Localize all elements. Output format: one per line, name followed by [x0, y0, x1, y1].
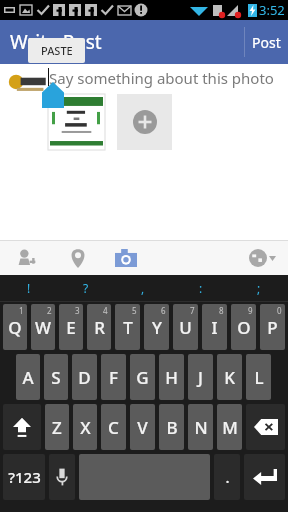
staticText: 3 — [75, 305, 80, 316]
staticText: D — [78, 366, 91, 389]
staticText: 0 — [277, 305, 282, 316]
staticText: A — [22, 366, 34, 389]
button[interactable]: ; — [230, 275, 288, 301]
button[interactable]: Y — [144, 304, 169, 350]
staticText: Q — [8, 316, 22, 339]
staticText: ?123 — [8, 467, 41, 487]
button[interactable]: , — [114, 275, 172, 301]
staticText: PASTE — [41, 43, 73, 58]
staticText: : — [199, 280, 203, 296]
staticText: O — [237, 316, 251, 339]
staticText: , — [141, 280, 145, 296]
button[interactable]: X — [73, 404, 97, 450]
staticText: Say something about this photo — [49, 68, 274, 88]
button[interactable]: U — [173, 304, 198, 350]
button[interactable]: Camera — [102, 241, 150, 275]
button[interactable]: I — [202, 304, 227, 350]
button[interactable]: Voice input — [49, 454, 75, 500]
button[interactable]: Audience selector — [236, 241, 288, 275]
staticText: 8 — [219, 305, 224, 316]
button[interactable]: Z — [45, 404, 69, 450]
staticText: N — [194, 416, 208, 439]
staticText: S — [51, 366, 61, 389]
staticText: . — [225, 467, 230, 487]
staticText: ; — [257, 280, 261, 296]
button[interactable]: PASTE — [28, 38, 85, 63]
button[interactable]: M — [217, 404, 242, 450]
staticText: V — [137, 416, 148, 439]
staticText: Post — [252, 33, 281, 52]
button[interactable]: Post — [245, 20, 288, 64]
button[interactable]: C — [101, 404, 126, 450]
staticText: B — [166, 416, 178, 439]
button[interactable]: L — [246, 354, 271, 400]
button[interactable]: Backspace — [246, 404, 285, 450]
staticText: K — [224, 366, 235, 389]
button[interactable]: Attached photo — [48, 94, 105, 150]
button[interactable]: J — [188, 354, 213, 400]
button[interactable]: ? — [57, 275, 114, 301]
button[interactable]: T — [115, 304, 140, 350]
staticText: 9 — [248, 305, 253, 316]
staticText: 3:52 — [259, 1, 285, 19]
staticText: L — [254, 366, 264, 389]
button[interactable]: D — [72, 354, 97, 400]
button[interactable]: Add photo — [117, 94, 172, 150]
button[interactable]: Tag people — [0, 241, 54, 275]
button[interactable]: H — [159, 354, 184, 400]
staticText: 2 — [47, 305, 52, 316]
button[interactable]: K — [217, 354, 242, 400]
button[interactable]: R — [87, 304, 111, 350]
button[interactable]: Enter — [244, 454, 285, 500]
button[interactable]: E — [59, 304, 83, 350]
button[interactable]: Q — [3, 304, 27, 350]
staticText: I — [211, 316, 218, 339]
button[interactable]: O — [231, 304, 256, 350]
staticText: T — [123, 316, 133, 339]
button[interactable]: N — [188, 404, 213, 450]
button[interactable]: P — [260, 304, 285, 350]
staticText: 6 — [161, 305, 166, 316]
staticText: H — [165, 366, 178, 389]
button[interactable]: Shift — [3, 404, 41, 450]
button[interactable]: A — [16, 354, 40, 400]
button[interactable]: ?123 — [3, 454, 45, 500]
staticText: 4 — [103, 305, 108, 316]
staticText: J — [198, 366, 203, 389]
button[interactable]: B — [159, 404, 184, 450]
staticText: W — [35, 316, 51, 339]
staticText: Z — [52, 416, 62, 439]
button[interactable]: : — [172, 275, 230, 301]
staticText: C — [108, 416, 119, 439]
staticText: R — [94, 316, 105, 339]
staticText: Y — [152, 316, 162, 339]
staticText: G — [136, 366, 149, 389]
button[interactable]: Add location — [54, 241, 102, 275]
button[interactable]: W — [31, 304, 55, 350]
staticText: E — [66, 316, 76, 339]
button[interactable]: . — [214, 454, 240, 500]
button[interactable]: S — [44, 354, 68, 400]
staticText: M — [222, 416, 238, 439]
button[interactable]: F — [101, 354, 126, 400]
staticText: 5 — [132, 305, 137, 316]
staticText: 7 — [190, 305, 195, 316]
staticText: U — [179, 316, 192, 339]
staticText: F — [109, 366, 118, 389]
button[interactable]: G — [130, 354, 155, 400]
button[interactable]: V — [130, 404, 155, 450]
button[interactable]: ! — [0, 275, 57, 301]
staticText: Write Post — [10, 29, 102, 55]
staticText: P — [267, 316, 278, 339]
staticText: 1 — [19, 305, 24, 316]
staticText: ! — [27, 280, 31, 296]
staticText: X — [80, 416, 91, 439]
staticText: ? — [83, 280, 89, 296]
